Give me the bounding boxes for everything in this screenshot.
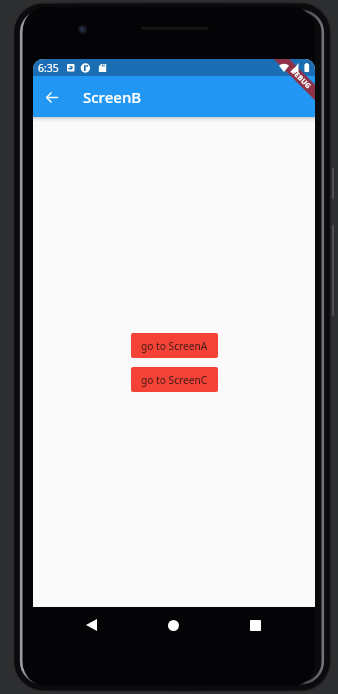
button[interactable]: Back — [75, 609, 107, 641]
staticText: ScreenB — [83, 87, 142, 107]
button[interactable]: Back — [37, 82, 67, 112]
staticText: go to ScreenC — [141, 373, 208, 387]
staticText: 6:35 — [38, 61, 59, 75]
button[interactable]: Home — [157, 609, 189, 641]
staticText: go to ScreenA — [141, 339, 208, 353]
button[interactable]: go to ScreenA — [131, 333, 218, 358]
button[interactable]: Recent apps — [239, 609, 271, 641]
staticText: DEBUG — [288, 66, 314, 92]
button[interactable]: go to ScreenC — [131, 367, 218, 392]
